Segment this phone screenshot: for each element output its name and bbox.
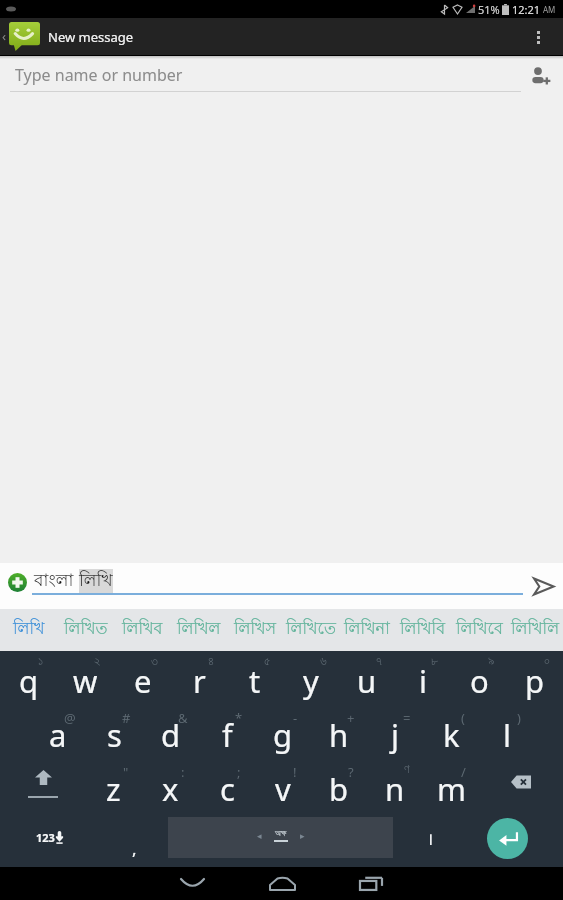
staticText: y [303, 660, 319, 702]
button[interactable]: লিখি [0, 609, 57, 651]
staticText: * [235, 709, 243, 727]
staticText: k [443, 714, 460, 756]
button[interactable]: Home [260, 867, 304, 900]
staticText: ৯ [488, 655, 495, 668]
button[interactable]: ৮ [395, 651, 451, 705]
staticText: ণ [404, 763, 410, 776]
button[interactable]: ; [199, 759, 255, 813]
button[interactable]: । [393, 813, 468, 867]
button[interactable]: লিখিবে [451, 609, 507, 651]
staticText: লিখি [79, 569, 113, 593]
button[interactable]: - [255, 705, 311, 759]
button[interactable]: Add contact [524, 60, 556, 92]
button[interactable]: * [199, 705, 255, 759]
staticText: । [427, 827, 434, 850]
staticText: h [329, 714, 349, 756]
button[interactable]: ৯ [451, 651, 507, 705]
staticText: w [73, 660, 98, 702]
staticText: r [193, 660, 206, 702]
staticText: q [19, 660, 39, 702]
staticText: ০ [544, 655, 550, 668]
staticText: g [273, 714, 293, 756]
button[interactable]: , [100, 813, 168, 867]
staticText: ৬ [320, 655, 327, 668]
staticText: বাংলা [34, 569, 79, 593]
staticText: & [178, 709, 188, 727]
button[interactable]: @ [29, 705, 86, 759]
staticText: ৩ [151, 655, 158, 668]
button[interactable]: ( [423, 705, 479, 759]
button[interactable]: ! [255, 759, 311, 813]
staticText: = [403, 709, 411, 727]
staticText: @ [64, 709, 76, 727]
staticText: j [391, 714, 399, 756]
staticText: c [220, 768, 235, 810]
button[interactable]: Enter [468, 813, 563, 867]
staticText: ? [348, 763, 354, 781]
staticText: লিখিলি [511, 618, 560, 641]
button[interactable]: " [85, 759, 142, 813]
button[interactable]: Recent apps [349, 867, 393, 900]
button[interactable]: ১ [0, 651, 57, 705]
button[interactable]: Symbols [0, 813, 100, 867]
button[interactable]: Attach [2, 567, 32, 597]
button[interactable]: লিখিবি [395, 609, 451, 651]
staticText: ২ [94, 655, 101, 668]
staticText: অক্ষ [275, 829, 287, 838]
staticText: z [106, 768, 121, 810]
button[interactable]: ণ [367, 759, 423, 813]
staticText: d [161, 714, 181, 756]
button[interactable]: ৫ [227, 651, 283, 705]
button[interactable]: ৭ [339, 651, 395, 705]
button[interactable]: লিখিতে [283, 609, 339, 651]
button[interactable]: Backspace [479, 759, 563, 813]
button[interactable]: = [367, 705, 423, 759]
staticText: s [107, 714, 122, 756]
staticText: o [470, 660, 489, 702]
button[interactable]: ? [311, 759, 367, 813]
staticText: / [461, 763, 466, 781]
button[interactable]: ৪ [171, 651, 227, 705]
staticText: b [329, 768, 349, 810]
staticText: ( [461, 709, 465, 727]
button[interactable]: ২ [57, 651, 114, 705]
staticText: ! [293, 763, 297, 781]
button[interactable]: লিখিব [114, 609, 171, 651]
staticText: n [385, 768, 405, 810]
button[interactable]: + [311, 705, 367, 759]
button[interactable]: লিখিত [57, 609, 114, 651]
staticText: ‹ [2, 27, 7, 45]
button[interactable]: Send [526, 569, 560, 603]
button[interactable]: Hide keyboard [170, 867, 214, 900]
button[interactable]: লিখিনা [339, 609, 395, 651]
staticText: ৪ [208, 655, 214, 668]
button[interactable]: লিখিস [227, 609, 283, 651]
button[interactable]: # [86, 705, 143, 759]
staticText: লিখিবি [400, 618, 446, 641]
staticText: লিখিত [64, 618, 108, 641]
staticText: u [357, 660, 377, 702]
button[interactable]: / [423, 759, 479, 813]
button[interactable]: Space [168, 817, 393, 858]
button[interactable]: & [143, 705, 199, 759]
button[interactable]: ৩ [114, 651, 171, 705]
staticText: f [222, 714, 233, 756]
button[interactable]: লিখিল [171, 609, 227, 651]
button[interactable]: More options [521, 20, 555, 54]
staticText: 12:21 [512, 2, 541, 17]
staticText: 51% [478, 2, 500, 17]
button[interactable]: : [142, 759, 199, 813]
staticText: e [134, 660, 152, 702]
button[interactable]: ০ [507, 651, 563, 705]
staticText: x [162, 768, 179, 810]
staticText: ৫ [264, 655, 271, 668]
staticText: লিখি [13, 618, 45, 641]
staticText: t [249, 660, 261, 702]
button[interactable]: Shift [0, 759, 85, 813]
button[interactable]: ৬ [283, 651, 339, 705]
staticText: লিখিতে [286, 618, 337, 641]
staticText: ◂ [257, 831, 262, 841]
button[interactable]: লিখিলি [507, 609, 563, 651]
staticText: লিখিস [234, 618, 277, 641]
button[interactable]: ) [479, 705, 535, 759]
